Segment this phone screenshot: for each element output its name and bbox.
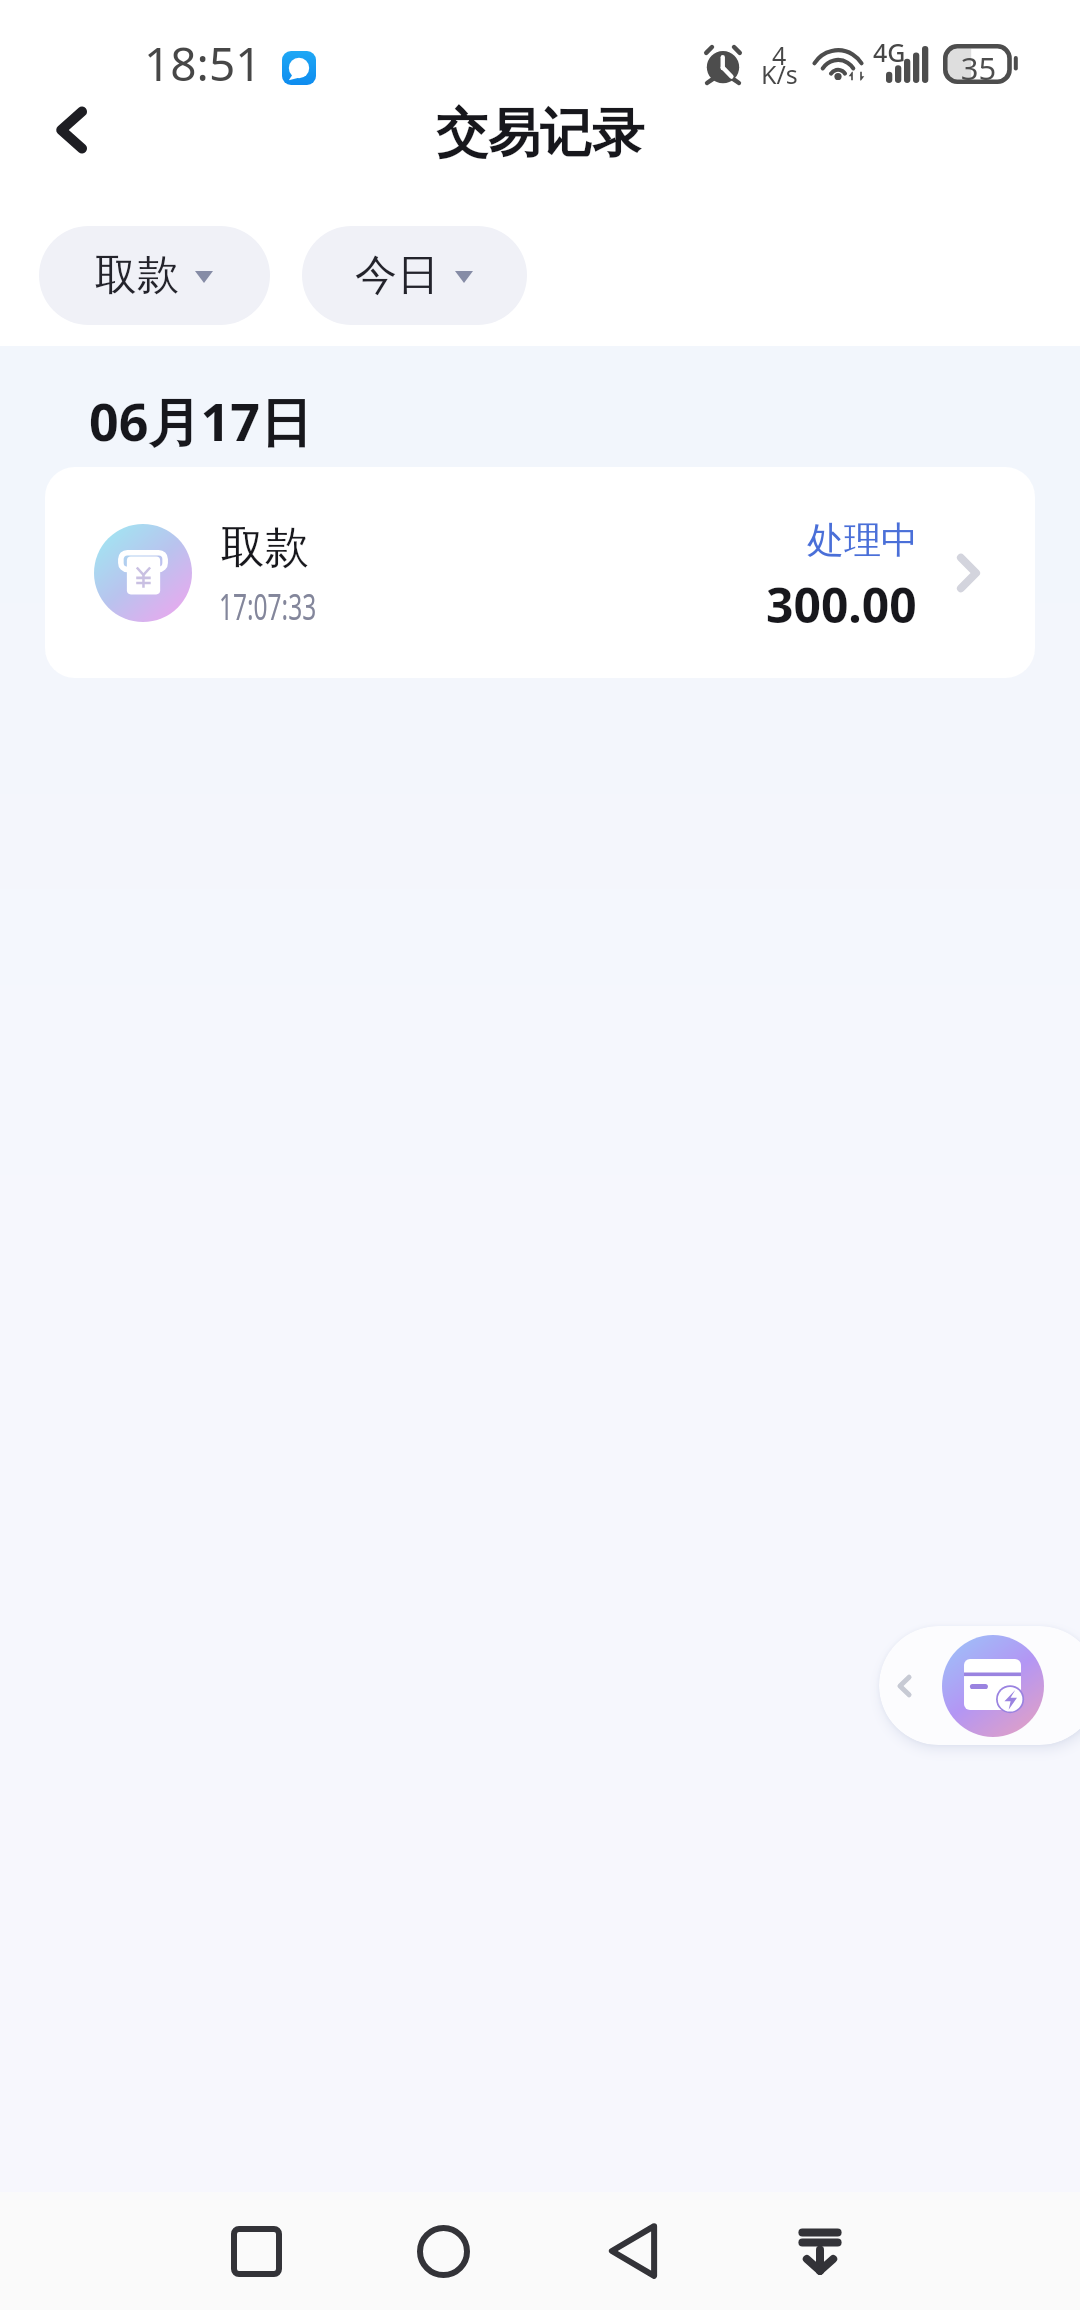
staticText: 取款 [221, 520, 309, 575]
staticText: 18:51 [144, 32, 262, 95]
staticText: 处理中 [807, 517, 918, 564]
staticText: 4 [772, 38, 787, 72]
staticText: 交易记录 [436, 101, 644, 167]
staticText: K/s [761, 57, 798, 91]
button[interactable]: Back [573, 2192, 693, 2310]
button[interactable]: Home [383, 2192, 503, 2310]
button[interactable]: 取款 [45, 467, 1035, 678]
staticText: 今日 [355, 249, 439, 302]
staticText: 300.00 [766, 572, 917, 637]
staticText: 4G [873, 35, 906, 69]
staticText: 17:07:33 [219, 582, 316, 631]
button[interactable]: Back [33, 92, 109, 168]
button[interactable]: Quick pay [879, 1626, 1080, 1745]
button[interactable]: Recents [196, 2192, 316, 2310]
staticText: 35 [941, 47, 1016, 89]
button[interactable]: 取款 [39, 226, 270, 325]
staticText: 06月17日 [89, 385, 312, 456]
staticText: 取款 [95, 249, 179, 302]
button[interactable]: Hide keyboard [760, 2192, 880, 2310]
button[interactable]: 今日 [302, 226, 527, 325]
